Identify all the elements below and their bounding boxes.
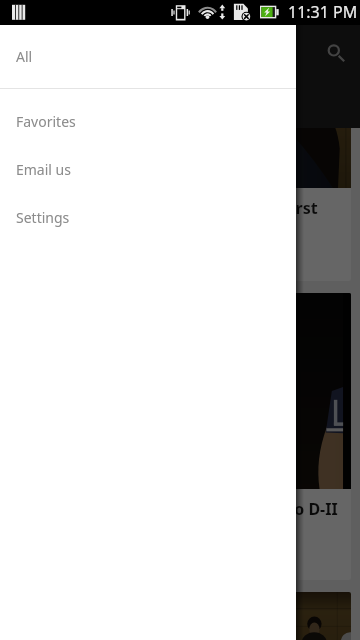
button[interactable]: Search	[312, 28, 358, 74]
staticText: All	[16, 47, 33, 66]
staticText: Tigers beat rival Wildcats for the first…	[21, 197, 339, 240]
button[interactable]: Star receiver is taking his talents to D…	[9, 293, 351, 580]
button[interactable]: Tigers beat rival Wildcats for the first…	[9, 0, 351, 281]
button[interactable]: All	[0, 32, 296, 80]
button[interactable]: Email us	[0, 145, 296, 193]
staticText: Settings	[16, 208, 70, 227]
staticText: Star receiver is taking his talents to D…	[21, 498, 338, 520]
staticText: Email us	[16, 160, 71, 179]
staticText: 11:31 PM	[288, 1, 358, 23]
staticText: Favorites	[16, 112, 76, 131]
button[interactable]: Favorites	[0, 97, 296, 145]
button[interactable]: Tigers rally late to top the rival Bulld…	[9, 592, 351, 640]
button[interactable]: Settings	[0, 193, 296, 241]
